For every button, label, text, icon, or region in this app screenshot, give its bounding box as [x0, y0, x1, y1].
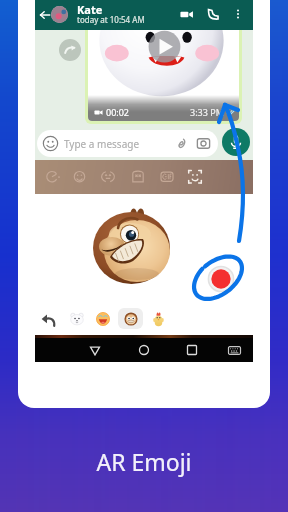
button[interactable]: Attach	[173, 135, 190, 152]
button[interactable]: Call	[204, 5, 222, 23]
button[interactable]: Type a message	[37, 130, 218, 157]
button[interactable]: More options	[229, 5, 247, 23]
button[interactable]: Record	[207, 265, 235, 293]
button[interactable]	[51, 6, 68, 23]
staticText: 00:02	[106, 106, 130, 118]
button[interactable]: Camera	[195, 135, 212, 152]
button[interactable]: Recents	[185, 343, 199, 357]
button[interactable]: Back	[37, 7, 53, 23]
staticText: Type a message	[64, 137, 140, 151]
button[interactable]: Bear emoji	[70, 312, 84, 326]
staticText: Kate	[77, 2, 103, 17]
staticText: AR Emoji	[96, 446, 192, 477]
button[interactable]: Home	[137, 343, 151, 357]
button[interactable]: Record voice message	[222, 128, 250, 156]
button[interactable]: Monkey emoji, selected	[118, 308, 143, 329]
button[interactable]: Switch keyboard	[227, 343, 242, 358]
button[interactable]: 00:02	[88, 30, 239, 121]
staticText: today at 10:54 AM	[77, 14, 145, 25]
button[interactable]: Back	[41, 313, 56, 327]
button[interactable]: Chick emoji	[153, 311, 164, 327]
button[interactable]: Forward	[59, 39, 81, 61]
button[interactable]: Video call	[177, 5, 196, 24]
button[interactable]: Laughing emoji	[96, 312, 110, 326]
button[interactable]: Back	[88, 343, 102, 357]
staticText: 3:33 PM	[190, 106, 224, 118]
